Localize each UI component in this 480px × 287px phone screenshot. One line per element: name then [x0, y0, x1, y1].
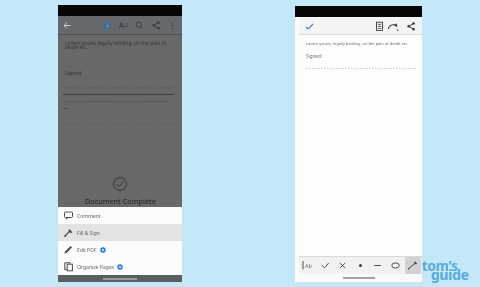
button[interactable]	[406, 21, 417, 32]
staticText: Signed:	[306, 53, 323, 59]
staticText: tom's	[422, 257, 458, 275]
button[interactable]: Organize Pages	[58, 258, 182, 275]
button[interactable]	[304, 21, 315, 32]
button[interactable]	[374, 21, 385, 32]
staticText: Comment	[77, 212, 101, 219]
button[interactable]: Edit PDF	[58, 241, 182, 258]
staticText: Signed:	[65, 70, 83, 77]
button[interactable]	[102, 20, 113, 31]
button[interactable]	[168, 20, 177, 31]
staticText: Lorem ipsum, legally binding, on the pai…	[306, 41, 409, 46]
staticText: Edit PDF	[77, 246, 97, 253]
staticText: Ab	[305, 262, 312, 269]
button[interactable]	[355, 260, 366, 271]
staticText: Document Complete	[85, 196, 156, 206]
staticText: death etc.	[65, 44, 88, 51]
button[interactable]	[134, 20, 145, 31]
staticText: Lorem ipsum, legally binding, on the pai…	[65, 40, 167, 47]
button[interactable]	[151, 20, 162, 31]
button[interactable]	[405, 257, 421, 274]
staticText: Fill & Sign	[77, 229, 100, 236]
staticText: guide	[431, 265, 469, 284]
button[interactable]	[320, 260, 331, 271]
button[interactable]	[62, 21, 72, 30]
button[interactable]	[387, 21, 399, 32]
button[interactable]: Fill & Sign	[58, 224, 182, 241]
staticText: Organize Pages	[77, 263, 114, 270]
button[interactable]	[372, 260, 383, 271]
button[interactable]: Ab	[302, 260, 313, 271]
button[interactable]: Comment	[58, 207, 182, 224]
button[interactable]	[390, 260, 401, 271]
button[interactable]	[118, 20, 129, 31]
button[interactable]	[337, 260, 348, 271]
